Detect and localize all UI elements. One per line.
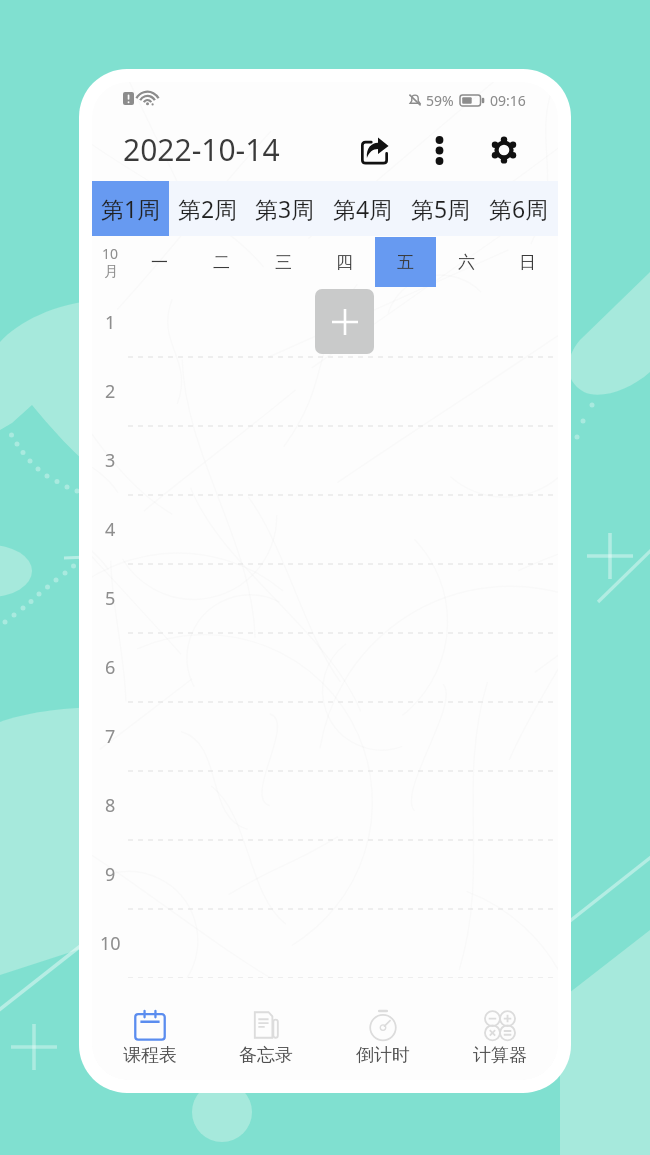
staticText: 一 (151, 252, 168, 273)
staticText: 4 (105, 517, 116, 542)
button[interactable]: More options (418, 129, 460, 171)
staticText: 三 (275, 252, 292, 273)
staticText: 六 (458, 252, 475, 273)
button[interactable]: 六 (436, 237, 497, 287)
staticText: 倒计时 (356, 1044, 410, 1067)
button[interactable]: 倒计时 (324, 978, 441, 1080)
staticText: 9 (105, 862, 116, 887)
staticText: 7 (105, 724, 116, 749)
staticText: 第4周 (333, 193, 393, 224)
staticText: 月 (104, 263, 118, 281)
staticText: 第3周 (255, 193, 315, 224)
staticText: 5 (105, 586, 116, 611)
staticText: 6 (105, 655, 116, 680)
button[interactable]: 第1周 (92, 181, 169, 236)
button[interactable]: 五 (375, 237, 436, 287)
staticText: 二 (213, 252, 230, 273)
staticText: 第2周 (178, 193, 238, 224)
staticText: 日 (519, 252, 536, 273)
button[interactable]: Settings (483, 129, 525, 171)
staticText: 四 (336, 252, 353, 273)
button[interactable]: 第5周 (402, 181, 480, 236)
button[interactable]: 三 (252, 237, 314, 287)
button[interactable]: 第3周 (246, 181, 324, 236)
staticText: 第1周 (101, 193, 161, 224)
staticText: 1 (105, 310, 116, 335)
button[interactable]: 课程表 (92, 978, 208, 1080)
button[interactable]: Add course (315, 289, 374, 354)
button[interactable]: 日 (497, 237, 558, 287)
button[interactable]: 第4周 (324, 181, 402, 236)
staticText: 课程表 (123, 1044, 177, 1067)
staticText: 备忘录 (239, 1044, 293, 1067)
button[interactable]: 第2周 (169, 181, 246, 236)
staticText: 2 (105, 379, 116, 404)
button[interactable]: 一 (128, 237, 190, 287)
staticText: 五 (397, 252, 414, 273)
staticText: 59% (426, 91, 454, 110)
staticText: 09:16 (490, 91, 526, 110)
staticText: 3 (105, 448, 116, 473)
staticText: 第5周 (411, 193, 471, 224)
staticText: 8 (105, 793, 116, 818)
button[interactable]: 第6周 (480, 181, 558, 236)
button[interactable]: Share (353, 129, 395, 171)
staticText: 10 (102, 244, 119, 263)
button[interactable]: 二 (190, 237, 252, 287)
button[interactable]: 四 (314, 237, 375, 287)
staticText: 10 (100, 931, 121, 956)
staticText: 第6周 (489, 193, 549, 224)
staticText: 计算器 (473, 1044, 527, 1067)
staticText: 2022-10-14 (123, 129, 280, 170)
button[interactable]: 计算器 (441, 978, 558, 1080)
button[interactable]: 备忘录 (208, 978, 324, 1080)
